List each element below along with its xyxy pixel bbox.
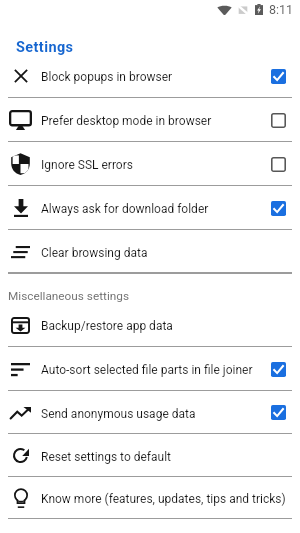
button[interactable] — [271, 69, 286, 84]
button[interactable]: Know more (features, updates, tips and t… — [0, 477, 300, 519]
staticText: Miscellaneous settings — [8, 289, 130, 303]
button[interactable] — [271, 201, 286, 216]
button[interactable]: Always ask for download folder — [0, 186, 300, 230]
button[interactable]: Ignore SSL errors — [0, 142, 300, 186]
staticText: Send anonymous usage data — [41, 407, 265, 421]
button[interactable] — [271, 362, 286, 377]
button[interactable]: Block popups in browser — [0, 54, 300, 98]
staticText: Always ask for download folder — [41, 202, 265, 216]
staticText: Settings — [16, 39, 74, 56]
button[interactable] — [271, 157, 286, 172]
staticText: Clear browsing data — [41, 246, 294, 260]
staticText: Auto-sort selected file parts in file jo… — [41, 363, 265, 377]
staticText: Prefer desktop mode in browser — [41, 114, 265, 128]
button[interactable]: Send anonymous usage data — [0, 391, 300, 434]
button[interactable] — [271, 113, 286, 128]
staticText: 8:11 — [269, 2, 294, 17]
button[interactable]: Prefer desktop mode in browser — [0, 98, 300, 142]
button[interactable]: Reset settings to default — [0, 434, 300, 477]
staticText: Backup/restore app data — [41, 319, 294, 333]
staticText: Reset settings to default — [41, 450, 294, 464]
button[interactable]: Auto-sort selected file parts in file jo… — [0, 347, 300, 391]
staticText: Block popups in browser — [41, 70, 265, 84]
button[interactable] — [271, 405, 286, 420]
staticText: Ignore SSL errors — [41, 158, 265, 172]
button[interactable]: Backup/restore app data — [0, 303, 300, 347]
staticText: Know more (features, updates, tips and t… — [41, 492, 294, 506]
button[interactable]: Clear browsing data — [0, 230, 300, 273]
